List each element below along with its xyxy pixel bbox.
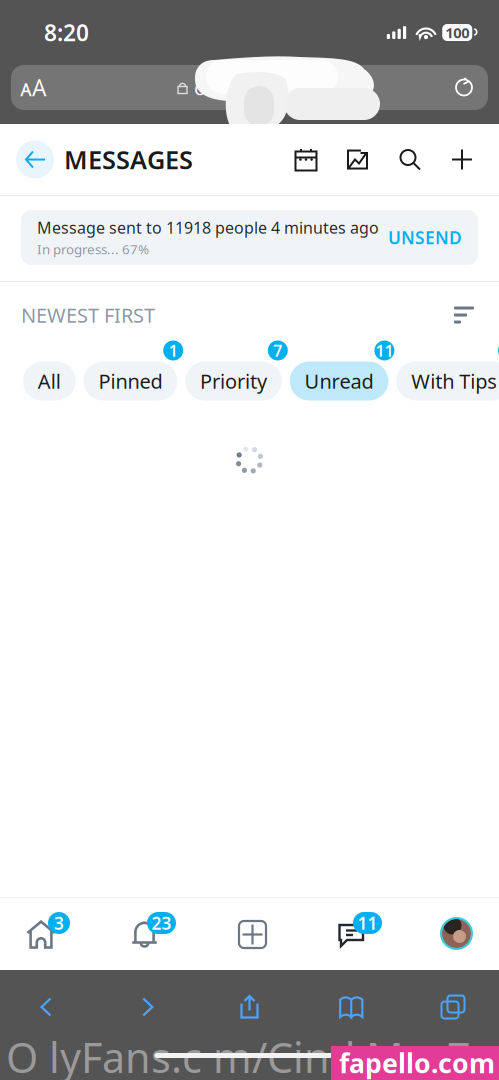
staticText: 7 [273, 340, 282, 361]
button[interactable]: Forward [116, 982, 180, 1032]
button[interactable]: Messages [309, 898, 416, 970]
staticText: 3 [54, 911, 64, 934]
staticText: UNSEND [388, 226, 462, 249]
staticText: O lyFans.c m/Cind M 7 [6, 1030, 471, 1080]
staticText: 100 [445, 23, 469, 42]
staticText: 23 [151, 911, 171, 934]
button[interactable]: Home [0, 898, 104, 970]
staticText: fapello.com [339, 1045, 495, 1080]
staticText: Message sent to 11918 people 4 minutes a… [37, 217, 379, 238]
button[interactable]: Back [14, 982, 78, 1032]
button[interactable]: New post [209, 898, 309, 970]
staticText: Pinned [98, 368, 162, 394]
button[interactable]: Unread [290, 340, 394, 400]
button[interactable]: Search [384, 133, 436, 185]
button[interactable]: Statistics [332, 133, 384, 185]
button[interactable]: Profile [416, 898, 499, 970]
button[interactable]: New message [436, 133, 488, 185]
staticText: Unread [305, 368, 374, 394]
staticText: MESSAGES [64, 143, 193, 176]
button[interactable]: Sort [447, 298, 481, 332]
button[interactable]: UNSEND [388, 226, 462, 249]
staticText: All [38, 368, 61, 394]
button[interactable]: Reload [440, 64, 488, 110]
button[interactable]: Priority [185, 340, 288, 400]
staticText: 11 [375, 340, 393, 361]
button[interactable]: Page settings [11, 64, 55, 110]
staticText: 1 [169, 340, 178, 361]
staticText: 11 [357, 911, 377, 934]
button[interactable]: All [23, 340, 82, 400]
staticText: ᴀA [20, 72, 46, 102]
button[interactable]: Pinned [84, 340, 183, 400]
button[interactable]: Notifications [104, 898, 209, 970]
staticText: In progress... 67% [37, 240, 149, 258]
button[interactable]: Share [217, 982, 281, 1032]
button[interactable]: Bookmarks [319, 982, 383, 1032]
staticText: 8:20 [44, 17, 89, 47]
staticText: NEWEST FIRST [21, 302, 155, 328]
button[interactable]: With Tips [396, 340, 499, 400]
button[interactable]: Back [16, 140, 54, 178]
staticText: Priority [200, 368, 267, 394]
button[interactable]: Tabs [421, 982, 485, 1032]
staticText: onlyfans.com [194, 74, 319, 101]
button[interactable]: Scheduled messages [280, 133, 332, 185]
staticText: With Tips [411, 368, 497, 394]
